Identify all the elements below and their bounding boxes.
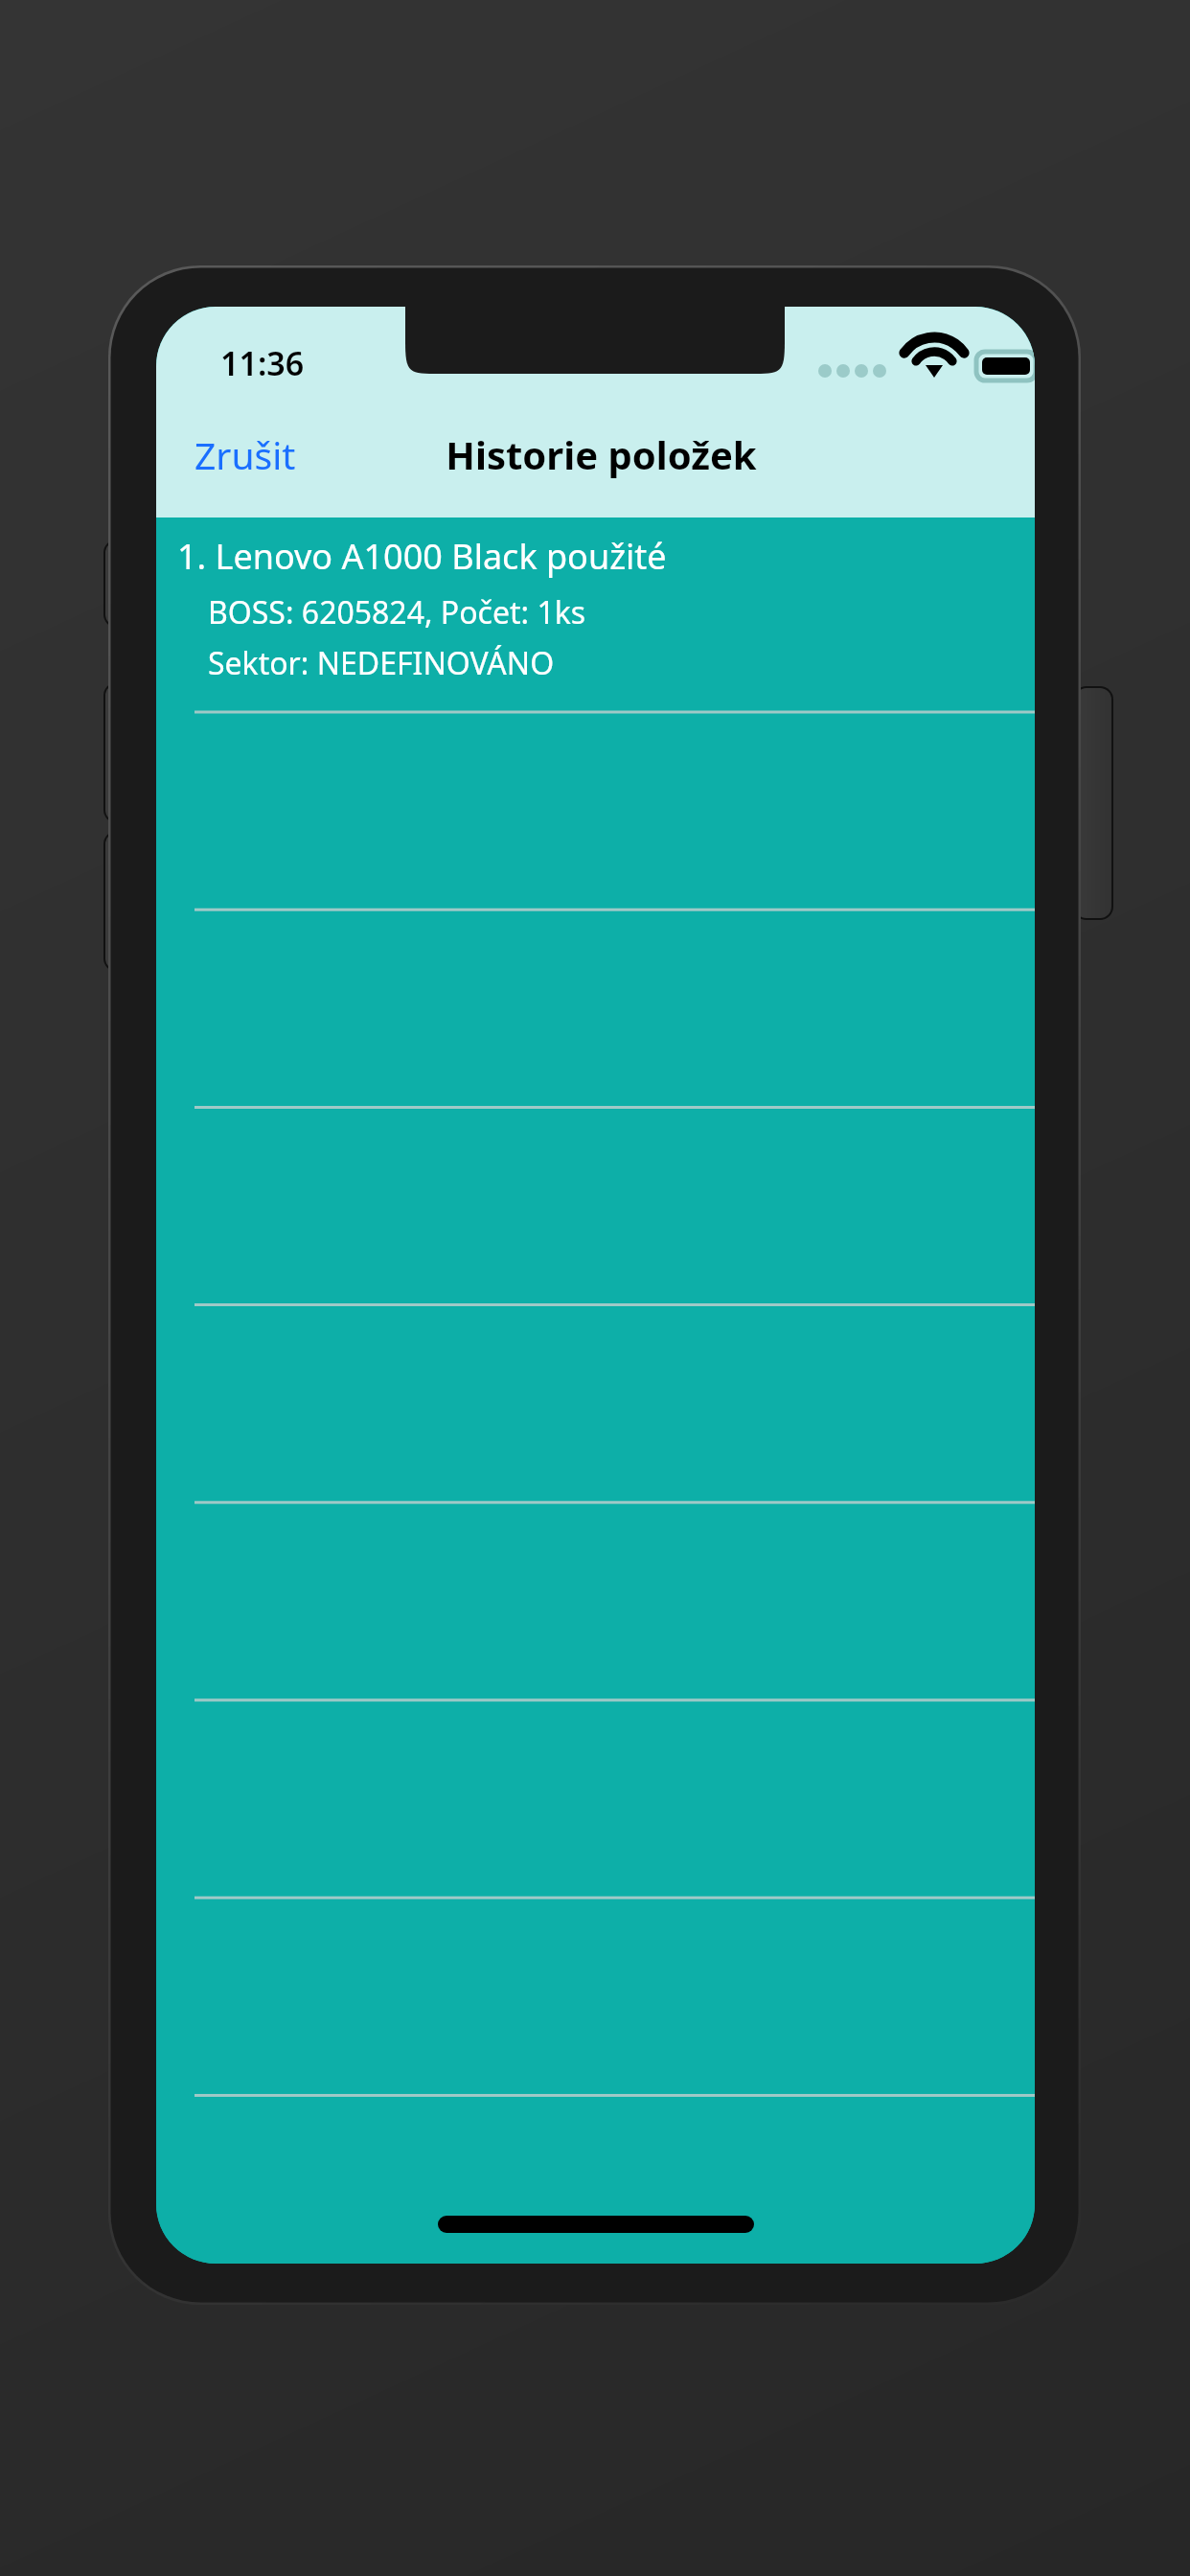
staticText: Historie položek [162, 428, 1035, 480]
button[interactable]: 1. Lenovo A1000 Black použité [156, 517, 1035, 713]
staticText: Sektor: NEDEFINOVÁNO [208, 642, 555, 684]
button[interactable]: Zrušit [177, 416, 313, 494]
button[interactable] [156, 910, 1035, 1108]
staticText: 11:36 [220, 341, 305, 385]
button[interactable] [156, 1108, 1035, 1305]
staticText: BOSS: 6205824, Počet: 1ks [208, 591, 586, 633]
other: Home indicator [438, 2216, 754, 2233]
button[interactable] [156, 2095, 1035, 2264]
button[interactable] [156, 1503, 1035, 1700]
button[interactable] [156, 1700, 1035, 1897]
button[interactable] [156, 1305, 1035, 1503]
staticText: 1. Lenovo A1000 Black použité [177, 533, 667, 580]
button[interactable] [156, 1897, 1035, 2095]
button[interactable] [156, 713, 1035, 910]
